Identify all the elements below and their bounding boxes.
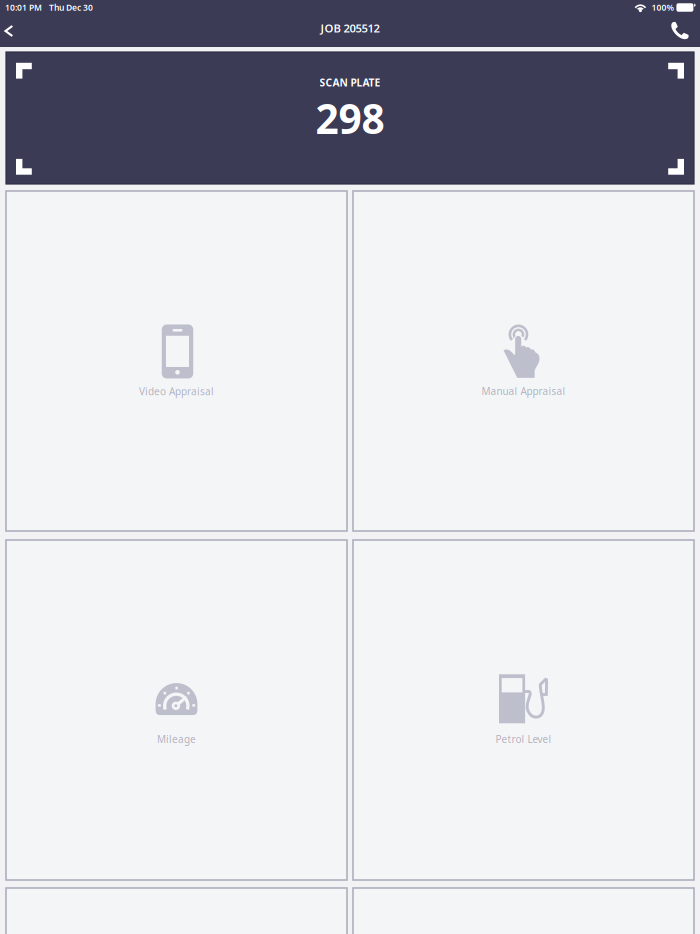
staticText: JOB 205512 [320, 20, 379, 36]
staticText: 10:01 PM [5, 2, 42, 13]
staticText: Mileage [157, 732, 196, 746]
button[interactable]: Manual Appraisal [353, 191, 694, 531]
button[interactable]: Back [0, 15, 38, 47]
staticText: Petrol Level [495, 732, 551, 746]
button[interactable]: More options [6, 888, 347, 934]
staticText: 298 [315, 90, 384, 146]
button[interactable]: Call [656, 15, 700, 47]
staticText: Manual Appraisal [481, 384, 565, 398]
staticText: SCAN PLATE [319, 75, 380, 89]
staticText: Thu Dec 30 [49, 2, 93, 13]
button[interactable]: More options [353, 888, 694, 934]
button[interactable]: Mileage [6, 540, 347, 880]
staticText: Video Appraisal [139, 384, 214, 398]
button[interactable]: Video Appraisal [6, 191, 347, 531]
staticText: 100% [651, 2, 673, 13]
button[interactable]: Petrol Level [353, 540, 694, 880]
